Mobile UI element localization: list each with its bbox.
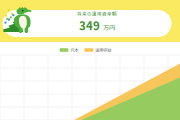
staticText: 元本 [70,47,78,53]
staticText: 349 [79,17,100,34]
staticText: 万円 [103,23,115,32]
staticText: 運用収益 [95,47,111,53]
staticText: 将来の運用資産額 [77,10,117,17]
